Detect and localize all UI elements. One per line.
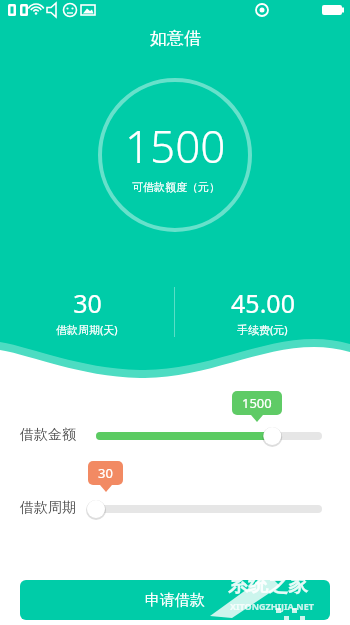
staticText: 如意借 xyxy=(150,28,201,49)
staticText: XITONGZHIJIA.NET xyxy=(230,600,314,612)
staticText: 30 xyxy=(98,464,113,482)
staticText: 借款周期(天) xyxy=(56,322,118,337)
button[interactable]: 申请借款 xyxy=(20,580,330,620)
staticText: 借款金额 xyxy=(20,426,76,444)
staticText: 手续费(元) xyxy=(237,322,288,337)
staticText: 1500 xyxy=(125,116,226,176)
button[interactable]: 45.00 xyxy=(175,286,350,337)
button[interactable]: 借款金额 xyxy=(0,420,350,450)
staticText: 申请借款 xyxy=(145,591,205,610)
staticText: 借款周期 xyxy=(20,499,76,517)
button[interactable]: 借款周期 xyxy=(0,493,350,523)
staticText: 45.00 xyxy=(231,286,295,320)
staticText: 30 xyxy=(73,286,102,320)
button[interactable]: 30 xyxy=(0,286,174,337)
staticText: 可借款额度（元） xyxy=(132,180,220,194)
staticText: 系统之家 xyxy=(228,572,308,597)
staticText: 1500 xyxy=(242,394,272,412)
